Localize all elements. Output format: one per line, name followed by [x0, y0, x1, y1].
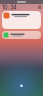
staticText: ıll — [38, 5, 41, 10]
staticText: 10:34 — [2, 4, 17, 11]
